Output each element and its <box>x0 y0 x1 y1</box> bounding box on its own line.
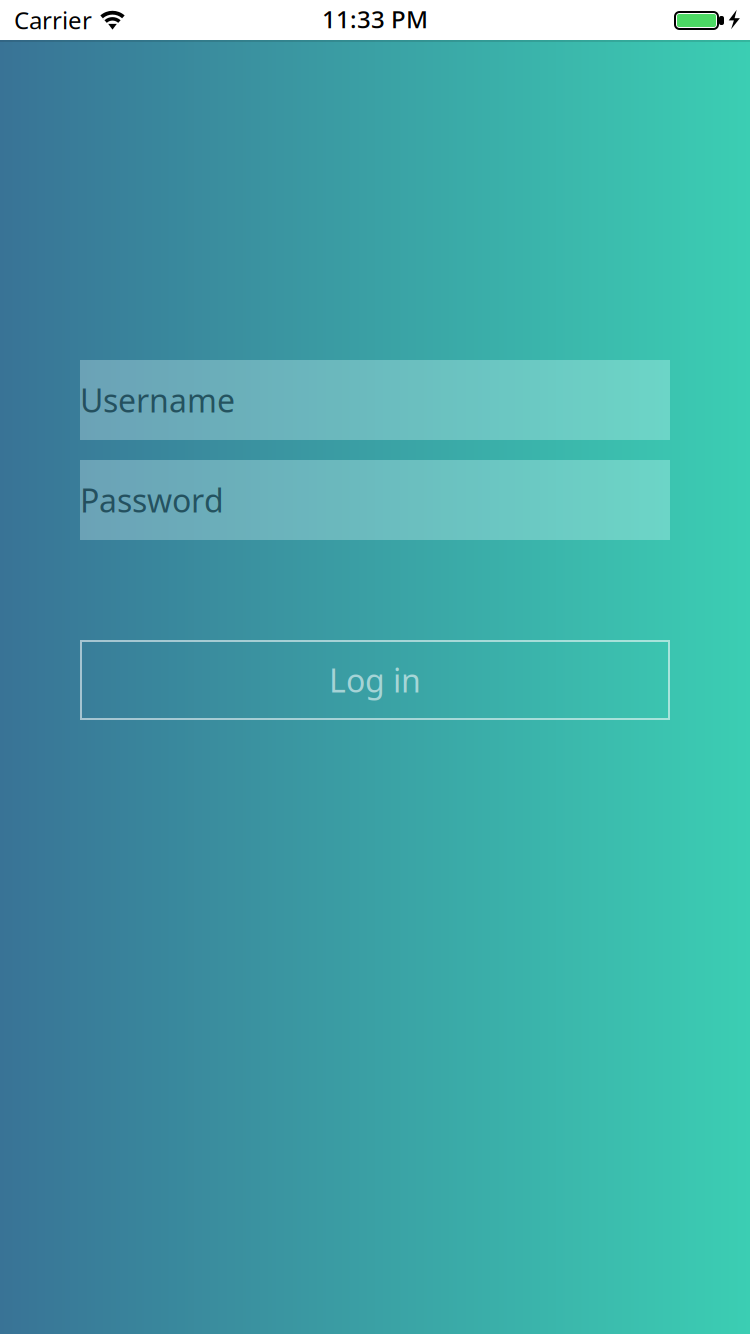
staticText: 11:33 PM <box>322 3 428 35</box>
staticText: Carrier <box>14 4 92 36</box>
staticText: Username <box>80 379 235 421</box>
button[interactable]: Username <box>80 360 670 440</box>
button[interactable]: Password <box>80 460 670 540</box>
staticText: Log in <box>329 659 421 701</box>
staticText: Password <box>80 479 224 521</box>
button[interactable]: Log in <box>80 640 670 720</box>
